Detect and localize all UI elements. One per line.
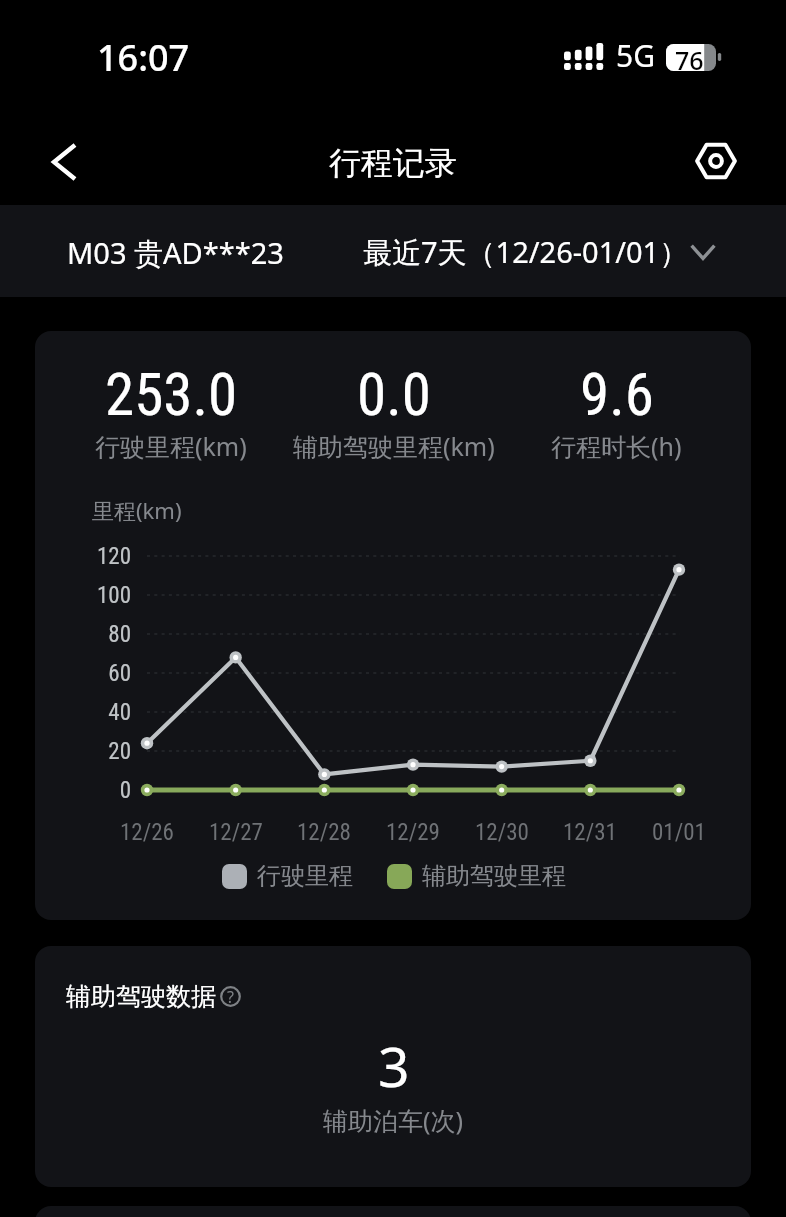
staticText: 12/31 <box>563 819 617 846</box>
staticText: 0.0 <box>357 360 431 429</box>
staticText: 12/28 <box>297 819 351 846</box>
button[interactable]: 253.0 <box>35 331 751 920</box>
staticText: 辅助驾驶里程(km) <box>293 429 495 463</box>
staticText: 100 <box>51 582 131 609</box>
staticText: 120 <box>51 543 131 570</box>
staticText: 9.6 <box>580 360 654 429</box>
staticText: 行程时长(h) <box>551 429 682 463</box>
staticText: 76 <box>675 43 704 70</box>
staticText: ? <box>227 986 234 1007</box>
staticText: 253.0 <box>105 360 238 429</box>
staticText: 12/26 <box>120 819 174 846</box>
staticText: 60 <box>51 660 131 687</box>
staticText: 12/29 <box>386 819 440 846</box>
button[interactable]: Settings <box>680 125 752 197</box>
staticText: 16:07 <box>97 33 190 82</box>
staticText: 辅助泊车(次) <box>323 1103 464 1137</box>
button[interactable]: M03 贵AD***23 <box>67 233 284 273</box>
staticText: 12/27 <box>209 819 263 846</box>
staticText: 80 <box>51 621 131 648</box>
button[interactable]: 辅助驾驶数据 <box>35 946 751 1187</box>
staticText: 辅助驾驶数据 <box>66 981 216 1012</box>
button[interactable]: 最近7天（12/26-01/01） <box>363 232 716 272</box>
staticText: 12/30 <box>475 819 529 846</box>
staticText: 里程(km) <box>92 495 182 525</box>
staticText: 行驶里程(km) <box>95 429 247 463</box>
staticText: 20 <box>51 738 131 765</box>
staticText: 行驶里程 <box>257 861 353 891</box>
button[interactable]: Back <box>28 126 100 198</box>
staticText: 40 <box>51 699 131 726</box>
button[interactable]: Info <box>220 986 241 1007</box>
staticText: 0 <box>51 777 131 804</box>
staticText: 01/01 <box>652 819 706 846</box>
staticText: 3 <box>378 1028 410 1103</box>
staticText: 辅助驾驶里程 <box>422 861 566 891</box>
staticText: 行程记录 <box>329 143 457 183</box>
staticText: 5G <box>616 35 655 76</box>
staticText: 最近7天（12/26-01/01） <box>363 232 689 272</box>
